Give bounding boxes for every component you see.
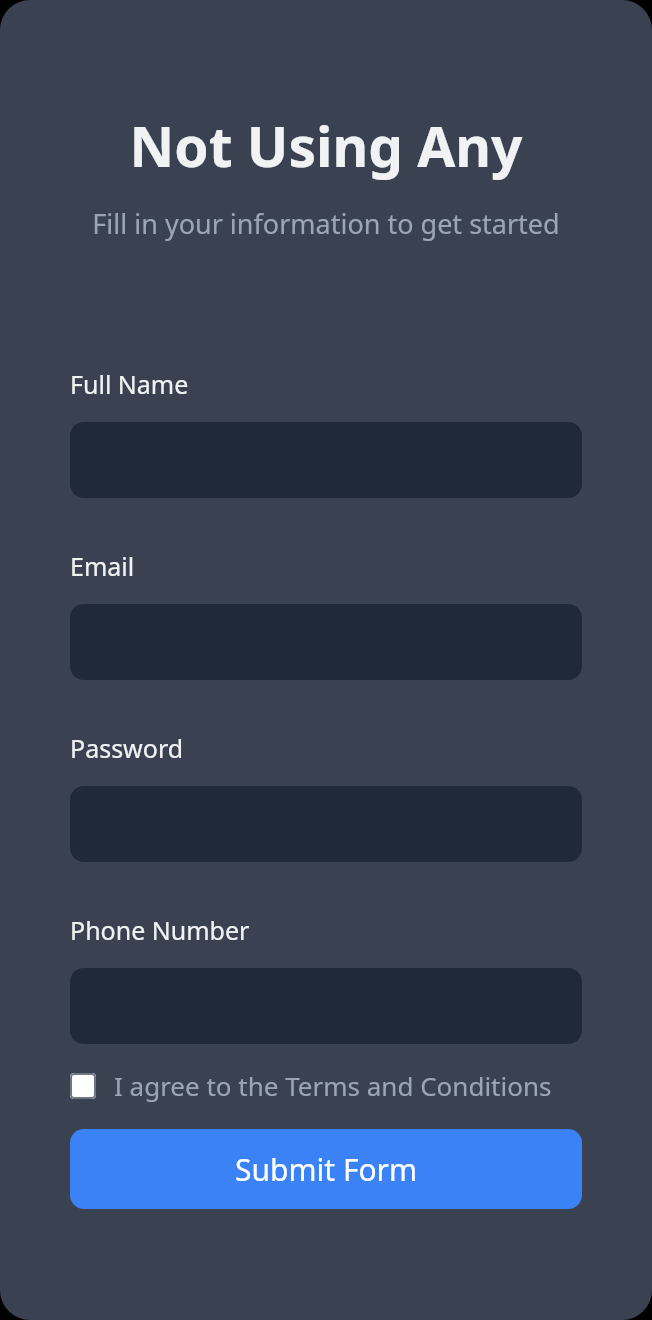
- staticText: Email: [70, 549, 135, 583]
- staticText: Password: [70, 731, 184, 765]
- other: Agree to terms checkbox: [70, 1073, 96, 1099]
- button[interactable]: Submit Form: [70, 1129, 582, 1209]
- staticText: Submit Form: [235, 1149, 418, 1190]
- button[interactable]: Agree to terms checkbox: [70, 1068, 582, 1103]
- staticText: Fill in your information to get started: [70, 205, 582, 242]
- staticText: Phone Number: [70, 913, 250, 947]
- staticText: I agree to the Terms and Conditions: [114, 1068, 552, 1103]
- staticText: Not Using Any Library: [70, 108, 582, 183]
- staticText: Full Name: [70, 367, 189, 401]
